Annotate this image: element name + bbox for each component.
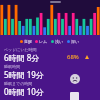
staticText: ベッドにいた時間 bbox=[4, 47, 37, 52]
staticText: 覚醒 bbox=[24, 39, 32, 44]
staticText: 深い bbox=[71, 39, 80, 44]
staticText: 浅い bbox=[55, 39, 64, 44]
button[interactable]: Detail bbox=[70, 92, 79, 100]
staticText: 5時間 19分 bbox=[4, 69, 44, 80]
staticText: 6時間 8分 bbox=[4, 52, 40, 63]
staticText: 睡眠までの時間 bbox=[4, 81, 33, 86]
button[interactable]: ベッドにいた時間 bbox=[0, 47, 100, 64]
staticText: 68% bbox=[67, 53, 79, 61]
button[interactable]: Mood bbox=[70, 74, 80, 84]
button[interactable]: 睡眠時間 bbox=[0, 64, 100, 81]
staticText: 睡眠時間 bbox=[4, 64, 20, 69]
staticText: レム bbox=[39, 39, 48, 44]
staticText: 0時間 10分 bbox=[4, 86, 44, 97]
button[interactable]: 睡眠までの時間 bbox=[0, 81, 100, 98]
